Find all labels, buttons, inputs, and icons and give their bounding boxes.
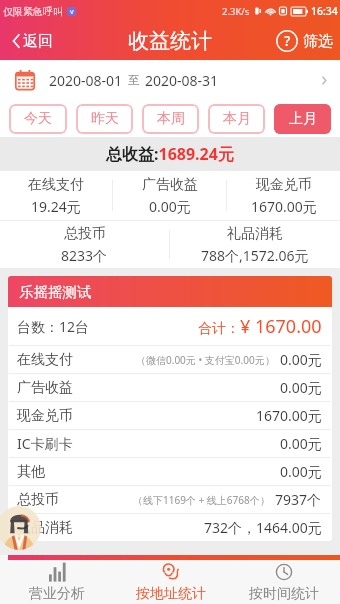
button[interactable]: IC卡刷卡 [17, 430, 322, 457]
staticText: 16:34 [311, 4, 338, 18]
staticText: 1670.00元 [256, 406, 322, 425]
staticText: （微信0.00元 • 支付宝0.00元） [136, 353, 275, 367]
staticText: 其他 [17, 463, 45, 481]
staticText: 2020-08-31 [145, 71, 219, 90]
staticText: 1670.00元 [251, 197, 317, 216]
button[interactable]: 礼品消耗 [170, 221, 340, 268]
button[interactable]: 在线支付 [0, 171, 112, 220]
button[interactable]: 按地址统计 [114, 560, 227, 604]
staticText: 总投币 [64, 225, 106, 243]
staticText: 筛选 [303, 32, 333, 51]
staticText: 0.00元 [280, 378, 322, 397]
staticText: 广告收益 [17, 379, 73, 397]
staticText: 仅限紧急呼叫 [3, 5, 63, 18]
button[interactable]: 今天 [9, 104, 67, 134]
staticText: 总投币 [17, 491, 59, 509]
staticText: 至 [128, 73, 140, 87]
staticText: 2020-08-01 [49, 71, 123, 90]
staticText: 732个，1464.00元 [204, 518, 322, 537]
button[interactable]: ? [276, 22, 333, 60]
button[interactable]: 在线客服 [0, 506, 41, 550]
staticText: 合计：¥ 1670.00 [198, 314, 322, 339]
staticText: 788个,1572.06元 [201, 246, 309, 265]
staticText: 昨天 [91, 110, 119, 128]
staticText: 0.00元 [280, 434, 322, 453]
staticText: 台数：12台 [17, 317, 90, 336]
button[interactable]: 按时间统计 [227, 560, 340, 604]
staticText: 0.00元 [280, 350, 322, 369]
staticText: 8233个 [61, 246, 108, 265]
staticText: V [70, 8, 74, 16]
staticText: 7937个 [275, 490, 322, 509]
staticText: （线下1169个 + 线上6768个） [133, 493, 270, 507]
staticText: 礼品消耗 [227, 225, 283, 243]
staticText: 2.3K/s [222, 5, 250, 18]
staticText: 在线支付 [28, 176, 84, 194]
button[interactable]: 昨天 [76, 104, 133, 134]
staticText: 按地址统计 [136, 585, 206, 603]
button[interactable]: 其他 [17, 458, 322, 485]
staticText: 现金兑币 [256, 176, 312, 194]
staticText: 0.00元 [280, 462, 322, 481]
button[interactable]: 本月 [208, 104, 265, 134]
staticText: 现金兑币 [17, 407, 73, 425]
button[interactable]: 广告收益 [113, 171, 226, 220]
staticText: 上月 [289, 110, 317, 128]
staticText: 广告收益 [142, 176, 198, 194]
button[interactable]: 总投币 [0, 221, 169, 268]
staticText: IC卡刷卡 [17, 434, 73, 453]
staticText: 营业分析 [29, 585, 85, 603]
staticText: 总收益:1689.24元 [106, 143, 234, 165]
staticText: 收益统计 [128, 28, 212, 54]
button[interactable]: 返回 [6, 22, 53, 60]
staticText: 按时间统计 [249, 585, 319, 603]
button[interactable]: 广告收益 [17, 374, 322, 401]
staticText: 乐摇摇测试 [19, 283, 92, 301]
staticText: 返回 [23, 32, 53, 51]
staticText: 礼品消耗 [17, 519, 73, 537]
button[interactable]: 总投币 [17, 486, 322, 513]
staticText: 今天 [24, 110, 52, 128]
button[interactable]: 本周 [142, 104, 199, 134]
button[interactable]: 现金兑币 [227, 171, 340, 220]
staticText: 0.00元 [149, 197, 191, 216]
staticText: 本月 [223, 110, 251, 128]
button[interactable]: 礼品消耗 [17, 514, 322, 541]
staticText: 本周 [157, 110, 185, 128]
button[interactable]: 上月 [274, 104, 331, 134]
staticText: ? [284, 31, 291, 50]
button[interactable]: 现金兑币 [17, 402, 322, 429]
button[interactable]: 在线支付 [17, 346, 322, 373]
staticText: 在线支付 [17, 351, 73, 369]
staticText: 19.24元 [31, 197, 81, 216]
button[interactable]: 2020-08-01 [15, 60, 330, 100]
button[interactable]: 营业分析 [0, 560, 114, 604]
